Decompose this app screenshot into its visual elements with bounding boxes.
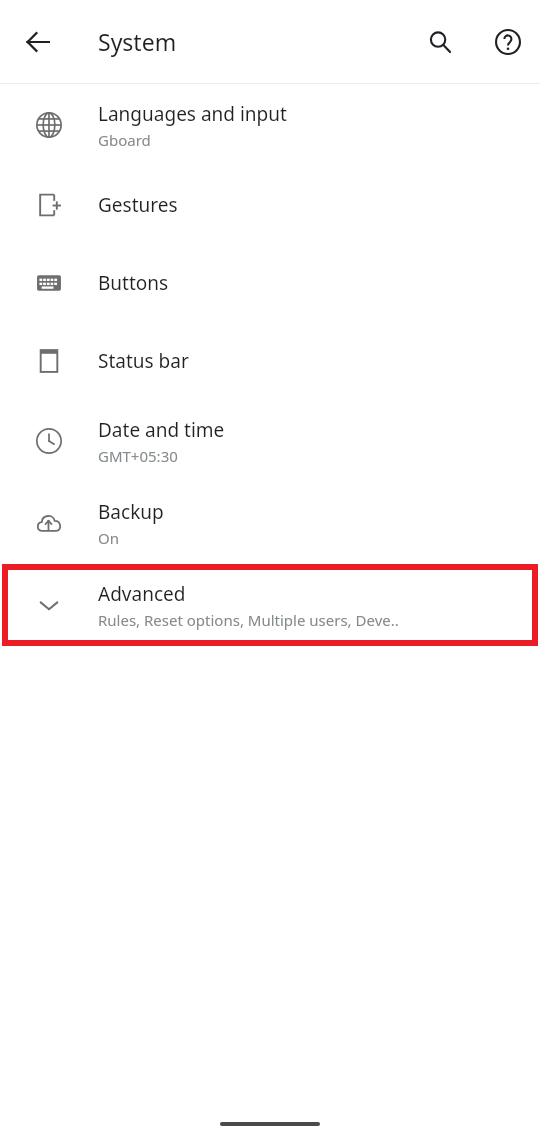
staticText: Gboard xyxy=(98,130,151,150)
staticText: Rules, Reset options, Multiple users, De… xyxy=(98,610,399,630)
staticText: Status bar xyxy=(98,348,189,374)
staticText: Gestures xyxy=(98,192,178,218)
button[interactable]: Languages and input xyxy=(0,84,540,166)
staticText: Buttons xyxy=(98,270,169,296)
button[interactable]: Status bar xyxy=(0,322,540,400)
staticText: Languages and input xyxy=(98,101,287,127)
button[interactable]: Backup xyxy=(0,482,540,564)
button[interactable]: Buttons xyxy=(0,244,540,322)
button[interactable]: Search xyxy=(416,18,464,66)
staticText: System xyxy=(98,26,177,57)
button[interactable]: Advanced xyxy=(0,564,540,646)
staticText: Backup xyxy=(98,499,164,525)
staticText: On xyxy=(98,528,119,548)
button[interactable]: Date and time xyxy=(0,400,540,482)
staticText: Date and time xyxy=(98,417,225,443)
button[interactable]: Back xyxy=(14,18,62,66)
staticText: Advanced xyxy=(98,581,186,607)
staticText: GMT+05:30 xyxy=(98,446,178,466)
button[interactable]: Help xyxy=(484,18,532,66)
button[interactable]: Gestures xyxy=(0,166,540,244)
